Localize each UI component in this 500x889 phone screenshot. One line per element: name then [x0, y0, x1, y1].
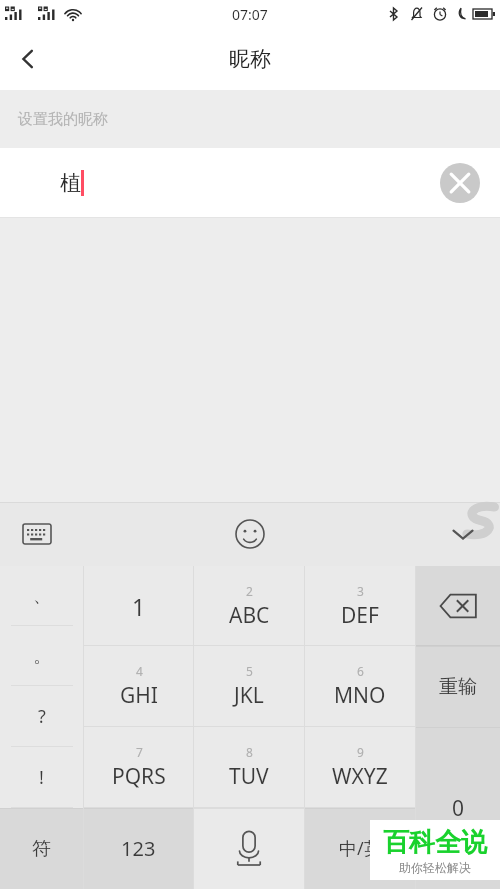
staticText: 昵称 — [229, 46, 271, 72]
staticText: 百科全说 — [383, 826, 487, 859]
button[interactable]: Switch keyboard — [12, 509, 62, 559]
staticText: PQRS — [112, 762, 166, 791]
staticText: 植 — [60, 170, 81, 196]
staticText: 。 — [33, 645, 51, 668]
button[interactable]: 植 — [0, 148, 500, 218]
button[interactable]: Voice input — [194, 808, 304, 889]
button[interactable]: 。 — [0, 626, 83, 686]
staticText: WXYZ — [332, 762, 388, 791]
staticText: 9 — [357, 744, 364, 760]
staticText: 中/英 — [339, 836, 382, 861]
button[interactable]: 1 — [84, 566, 193, 646]
staticText: 重输 — [439, 675, 477, 699]
button[interactable]: Clear text — [440, 163, 480, 203]
button[interactable]: Back — [0, 31, 56, 87]
staticText: 1 — [132, 591, 146, 622]
button[interactable]: 0 — [416, 727, 500, 889]
button[interactable]: 重输 — [416, 646, 500, 727]
staticText: 8 — [246, 744, 253, 760]
button[interactable]: 7 — [84, 727, 193, 808]
staticText: 4 — [136, 663, 143, 679]
staticText: 5 — [246, 663, 253, 679]
button[interactable]: 、 — [0, 566, 83, 626]
button[interactable]: ! — [0, 747, 83, 808]
staticText: GHI — [120, 681, 158, 710]
button[interactable]: 符 — [0, 808, 83, 889]
button[interactable]: Emoji — [225, 509, 275, 559]
staticText: MNO — [334, 681, 386, 710]
staticText: JKL — [234, 681, 264, 710]
staticText: 0 — [452, 794, 465, 823]
staticText: 123 — [121, 835, 156, 862]
button[interactable]: 4 — [84, 646, 193, 727]
staticText: 07:07 — [232, 5, 268, 24]
button[interactable]: 9 — [305, 727, 415, 808]
button[interactable]: 中/英 — [305, 808, 415, 889]
staticText: 助你轻松解决 — [399, 860, 471, 875]
staticText: TUV — [229, 762, 269, 791]
staticText: 2 — [246, 583, 253, 599]
staticText: 、 — [33, 585, 51, 608]
button[interactable]: 123 — [84, 808, 193, 889]
button[interactable]: 5 — [194, 646, 304, 727]
staticText: 符 — [32, 837, 51, 861]
staticText: ! — [39, 765, 44, 790]
button[interactable]: 6 — [305, 646, 415, 727]
button[interactable]: 8 — [194, 727, 304, 808]
staticText: 6 — [357, 663, 364, 679]
button[interactable]: ? — [0, 686, 83, 747]
staticText: 7 — [136, 744, 143, 760]
staticText: 设置我的昵称 — [18, 110, 108, 129]
button[interactable]: 2 — [194, 566, 304, 646]
button[interactable]: Backspace — [416, 566, 500, 646]
staticText: ABC — [229, 601, 270, 630]
button[interactable]: 3 — [305, 566, 415, 646]
staticText: ? — [38, 704, 46, 729]
staticText: 3 — [357, 583, 364, 599]
button[interactable]: Hide keyboard — [438, 509, 488, 559]
staticText: DEF — [341, 601, 379, 630]
